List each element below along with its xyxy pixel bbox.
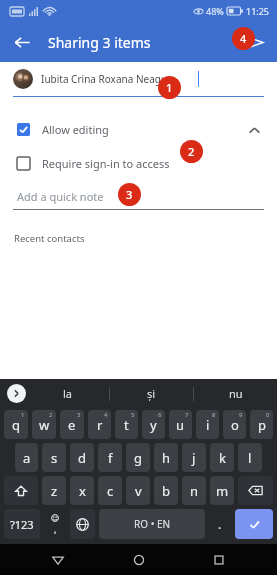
staticText: Recent contacts bbox=[14, 232, 85, 245]
staticText: la bbox=[63, 386, 73, 401]
button[interactable]: ?123 bbox=[4, 509, 40, 539]
button[interactable]: Collapse bbox=[241, 117, 267, 143]
button[interactable]: Require sign-in to access bbox=[0, 151, 277, 175]
button[interactable]: s bbox=[42, 443, 66, 472]
staticText: l bbox=[248, 449, 252, 467]
button[interactable]: r bbox=[88, 410, 111, 439]
button[interactable]: . bbox=[209, 509, 231, 539]
button[interactable]: k bbox=[210, 443, 234, 472]
staticText: 9 bbox=[239, 411, 243, 419]
button[interactable]: Send bbox=[239, 26, 271, 58]
button[interactable]: x bbox=[70, 476, 94, 505]
button[interactable]: ☺ bbox=[44, 509, 66, 539]
staticText: x bbox=[79, 482, 86, 500]
staticText: s bbox=[51, 449, 58, 467]
staticText: y bbox=[150, 416, 157, 434]
staticText: f bbox=[108, 449, 113, 467]
staticText: n bbox=[190, 482, 199, 500]
button[interactable]: la bbox=[26, 379, 109, 408]
button[interactable]: More suggestions bbox=[7, 384, 26, 403]
button[interactable]: nu bbox=[194, 379, 277, 408]
staticText: j bbox=[192, 449, 196, 467]
button[interactable]: Recents bbox=[197, 544, 241, 575]
staticText: 5 bbox=[131, 411, 135, 419]
staticText: v bbox=[135, 482, 142, 500]
staticText: d bbox=[78, 449, 86, 467]
staticText: Require sign-in to access bbox=[42, 156, 170, 171]
button[interactable]: o bbox=[223, 410, 246, 439]
button[interactable]: e bbox=[60, 410, 84, 439]
staticText: RO • EN bbox=[134, 517, 171, 531]
button[interactable]: și bbox=[110, 379, 193, 408]
button[interactable]: Iubita Crina Roxana Neagu bbox=[0, 62, 277, 96]
button[interactable]: z bbox=[42, 476, 66, 505]
staticText: 3 bbox=[77, 411, 81, 419]
staticText: Sharing 3 items bbox=[48, 33, 151, 52]
button[interactable]: c bbox=[98, 476, 122, 505]
staticText: 6 bbox=[158, 411, 162, 419]
button[interactable]: Back bbox=[6, 26, 38, 58]
staticText: , bbox=[54, 523, 57, 535]
staticText: Add a quick note bbox=[17, 189, 104, 204]
staticText: p bbox=[258, 416, 266, 434]
staticText: z bbox=[51, 482, 58, 500]
staticText: 2 bbox=[188, 144, 195, 159]
staticText: 7 bbox=[185, 411, 189, 419]
button[interactable]: Enter bbox=[235, 509, 273, 539]
button[interactable]: Add a quick note bbox=[0, 189, 277, 210]
staticText: 0 bbox=[266, 411, 270, 419]
button[interactable]: p bbox=[250, 410, 273, 439]
button[interactable]: Home bbox=[117, 544, 161, 575]
staticText: b bbox=[162, 482, 170, 500]
button[interactable]: j bbox=[182, 443, 206, 472]
staticText: 1 bbox=[166, 80, 173, 95]
staticText: m bbox=[216, 482, 229, 500]
staticText: q bbox=[12, 416, 20, 434]
staticText: 4 bbox=[104, 411, 108, 419]
button[interactable]: Back bbox=[36, 544, 80, 575]
button[interactable]: q bbox=[4, 410, 28, 439]
staticText: u bbox=[176, 416, 185, 434]
staticText: t bbox=[124, 416, 129, 434]
button[interactable]: RO • EN bbox=[99, 509, 205, 539]
button[interactable]: m bbox=[210, 476, 234, 505]
button[interactable]: y bbox=[142, 410, 165, 439]
staticText: 11:25 bbox=[246, 5, 270, 17]
staticText: 1 bbox=[21, 411, 25, 419]
button[interactable]: a bbox=[15, 443, 38, 472]
button[interactable]: u bbox=[169, 410, 192, 439]
staticText: 4 bbox=[240, 31, 247, 46]
button[interactable]: g bbox=[126, 443, 150, 472]
staticText: w bbox=[39, 416, 50, 434]
staticText: 8 bbox=[212, 411, 216, 419]
staticText: o bbox=[231, 416, 239, 434]
button[interactable]: i bbox=[196, 410, 219, 439]
button[interactable]: l bbox=[238, 443, 262, 472]
button[interactable]: t bbox=[115, 410, 138, 439]
staticText: 2 bbox=[49, 411, 53, 419]
staticText: i bbox=[206, 416, 210, 434]
button[interactable]: f bbox=[98, 443, 122, 472]
staticText: k bbox=[219, 449, 226, 467]
staticText: Allow editing bbox=[42, 122, 109, 137]
button[interactable]: Change language bbox=[70, 509, 95, 539]
button[interactable]: Allow editing bbox=[0, 117, 277, 141]
staticText: și bbox=[147, 386, 156, 401]
staticText: 3 bbox=[126, 187, 133, 202]
button[interactable]: v bbox=[126, 476, 150, 505]
button[interactable]: b bbox=[154, 476, 178, 505]
button[interactable]: h bbox=[154, 443, 178, 472]
button[interactable]: Shift bbox=[4, 476, 38, 505]
button[interactable]: d bbox=[70, 443, 94, 472]
staticText: . bbox=[218, 516, 222, 532]
staticText: r bbox=[97, 416, 103, 434]
button[interactable]: w bbox=[32, 410, 56, 439]
button[interactable]: n bbox=[182, 476, 206, 505]
staticText: nu bbox=[229, 386, 243, 401]
staticText: ☺ bbox=[51, 514, 60, 523]
staticText: 48% bbox=[206, 5, 224, 17]
staticText: a bbox=[23, 449, 31, 467]
button[interactable]: Backspace bbox=[238, 476, 273, 505]
staticText: Iubita Crina Roxana Neagu bbox=[41, 72, 168, 86]
staticText: g bbox=[134, 449, 142, 467]
